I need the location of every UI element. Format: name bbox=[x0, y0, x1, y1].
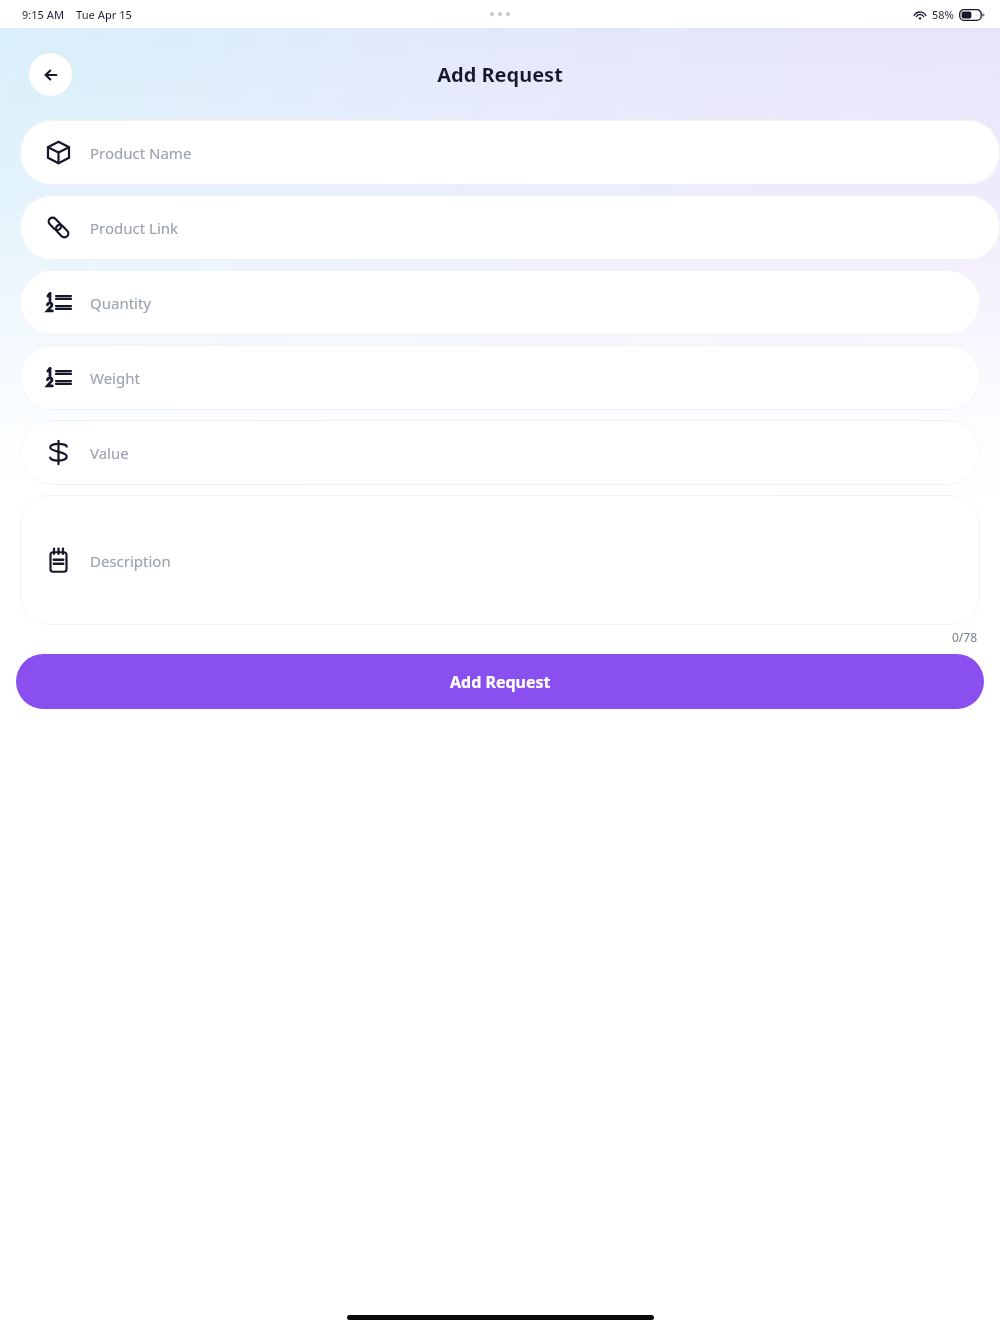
staticText: 9:15 AM bbox=[22, 7, 65, 22]
button[interactable]: Description bbox=[20, 495, 980, 625]
button[interactable]: Product Name bbox=[20, 120, 1000, 185]
staticText: Description bbox=[90, 551, 171, 571]
button[interactable]: Quantity bbox=[20, 270, 980, 335]
button[interactable]: Back bbox=[29, 53, 72, 96]
button[interactable]: Value bbox=[20, 420, 980, 485]
staticText: Add Request bbox=[450, 671, 551, 693]
staticText: 58% bbox=[932, 7, 954, 22]
staticText: Product Name bbox=[90, 143, 192, 163]
staticText: Quantity bbox=[90, 293, 152, 313]
staticText: Value bbox=[90, 443, 129, 463]
button[interactable]: Add Request bbox=[16, 654, 984, 709]
staticText: Add Request bbox=[437, 61, 563, 88]
staticText: Product Link bbox=[90, 218, 179, 238]
button[interactable]: Product Link bbox=[20, 195, 1000, 260]
staticText: Weight bbox=[90, 368, 140, 388]
button[interactable]: Weight bbox=[20, 345, 980, 410]
staticText: Tue Apr 15 bbox=[76, 7, 132, 22]
staticText: 0/78 bbox=[952, 629, 978, 645]
